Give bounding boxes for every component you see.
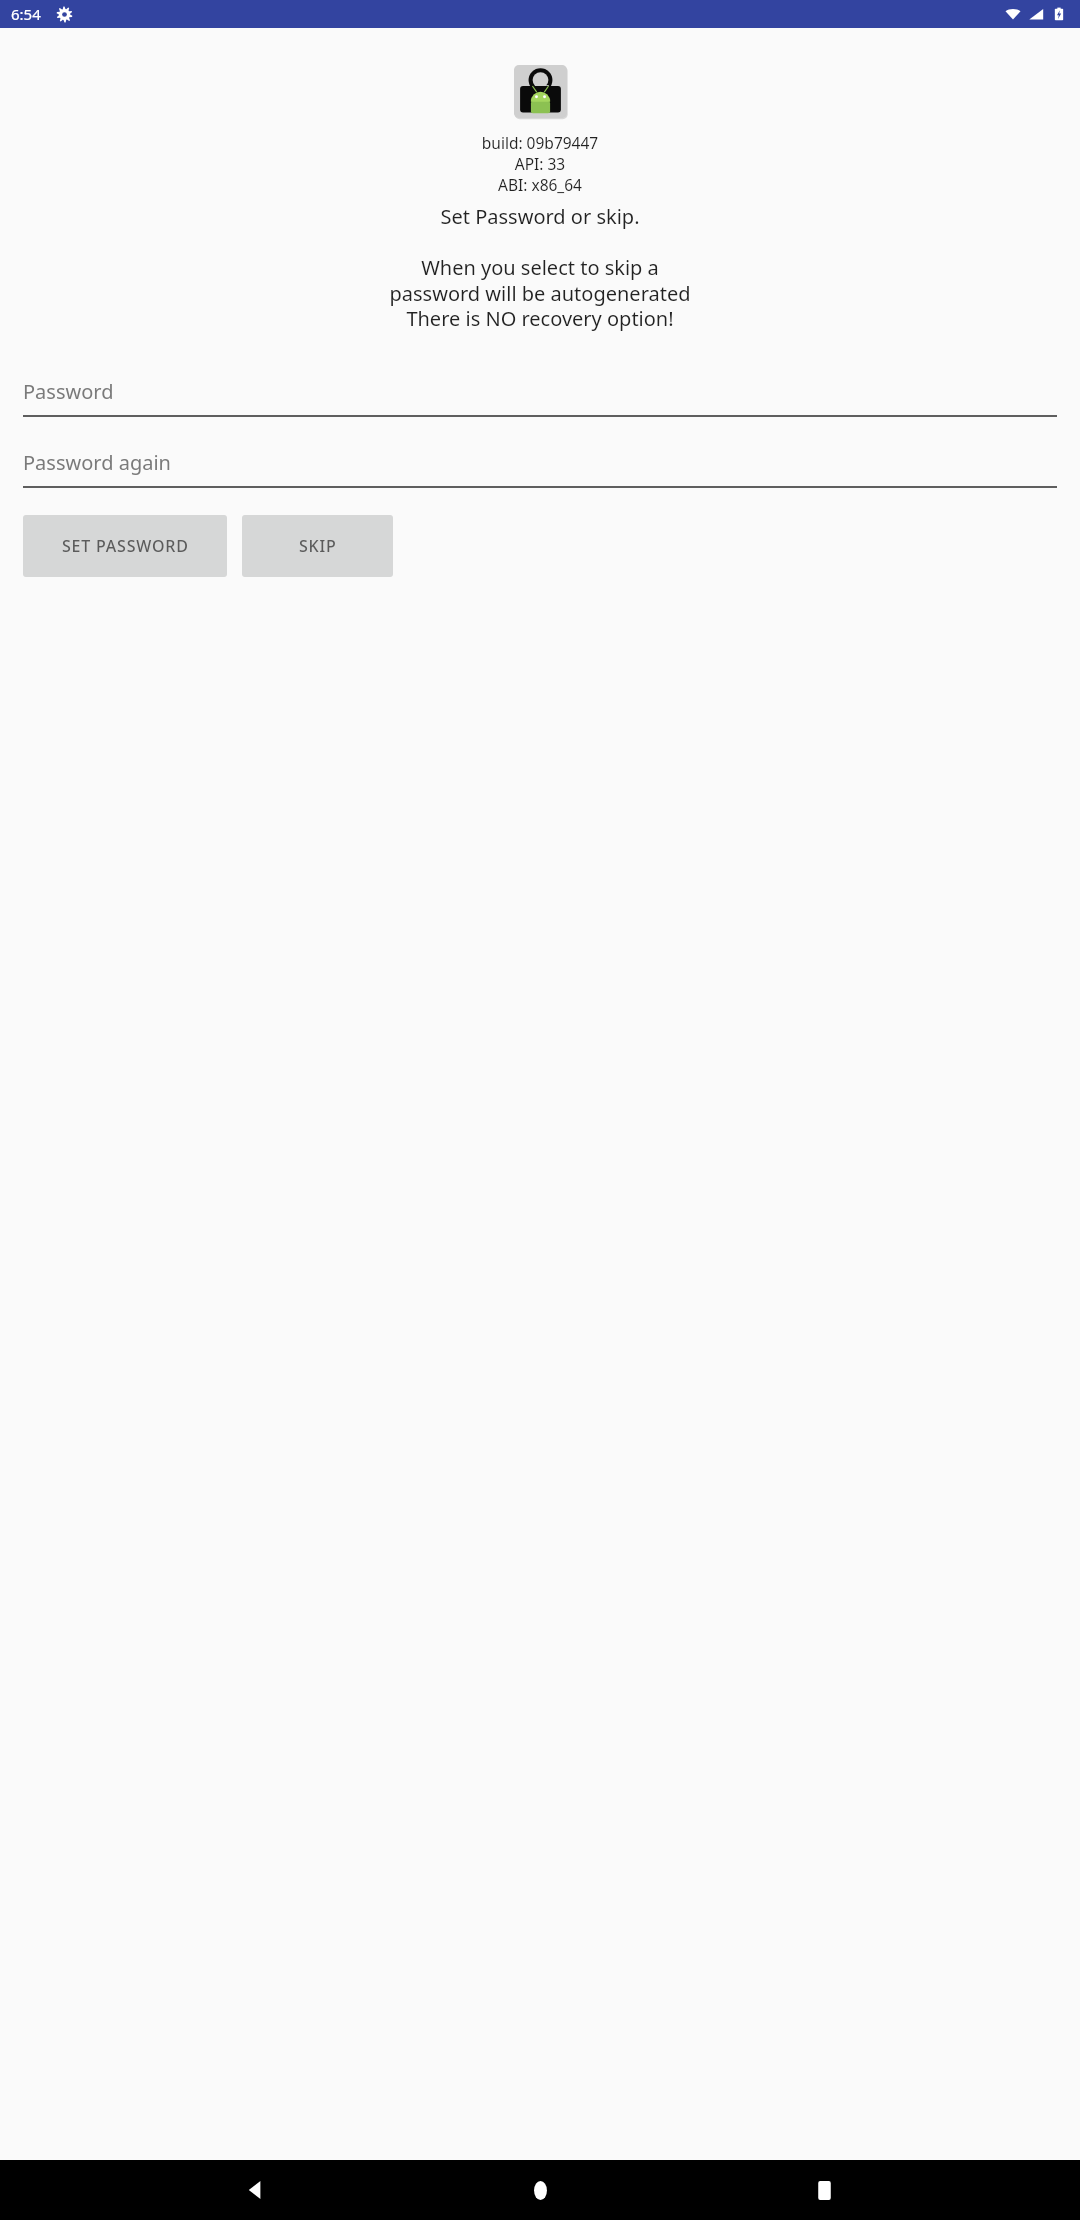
button[interactable]: Password again — [23, 449, 1057, 488]
button[interactable]: SET PASSWORD — [23, 515, 227, 577]
staticText: SKIP — [299, 535, 337, 557]
staticText: 6:54 — [11, 4, 41, 24]
staticText: build: 09b79447 — [0, 132, 1080, 153]
button[interactable]: Password — [23, 378, 1057, 417]
staticText: Set Password or skip. — [0, 203, 1080, 230]
button[interactable]: Back — [228, 2162, 284, 2218]
staticText: When you select to skip a password will … — [8, 254, 1072, 332]
staticText: ABI: x86_64 — [0, 174, 1080, 195]
staticText: Password — [23, 378, 114, 405]
button[interactable]: SKIP — [242, 515, 393, 577]
staticText: API: 33 — [0, 153, 1080, 174]
button[interactable]: Home — [512, 2162, 568, 2218]
staticText: Password again — [23, 449, 171, 476]
button[interactable]: Recents — [796, 2162, 852, 2218]
staticText: SET PASSWORD — [62, 535, 189, 557]
